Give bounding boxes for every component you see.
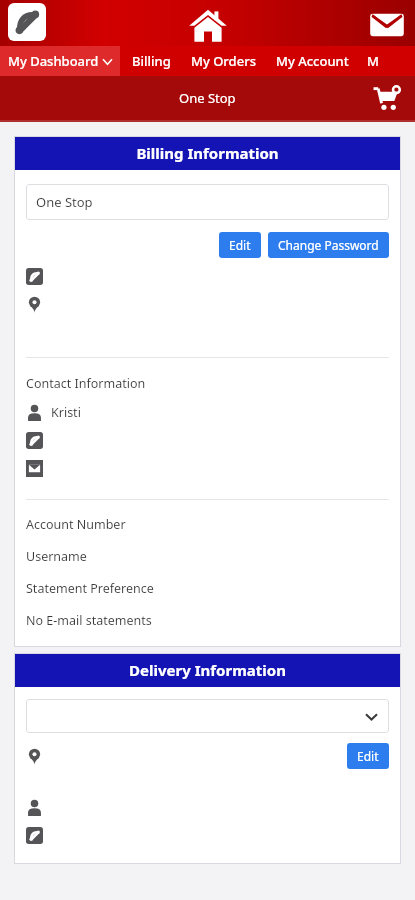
staticText: Change Password — [278, 237, 379, 253]
staticText: No E-mail statements — [26, 612, 152, 629]
staticText: My Account — [276, 52, 349, 70]
button[interactable]: Edit — [219, 232, 261, 258]
staticText: Contact Information — [26, 375, 146, 392]
staticText: Billing — [132, 52, 171, 70]
button[interactable]: My Dashboard — [0, 46, 120, 76]
button[interactable]: Change Password — [268, 232, 389, 258]
staticText: Billing Information — [136, 143, 279, 163]
staticText: Edit — [357, 748, 379, 764]
staticText: M — [367, 52, 379, 70]
button[interactable]: M — [355, 46, 385, 76]
staticText: One Stop — [36, 193, 93, 211]
staticText: Account Number — [26, 516, 126, 533]
button[interactable]: Edit — [347, 743, 389, 769]
staticText: Delivery Information — [129, 660, 286, 680]
button[interactable]: One Stop — [26, 184, 389, 220]
button[interactable]: Billing — [120, 46, 177, 76]
button[interactable]: Home — [186, 3, 230, 46]
button[interactable]: My Orders — [177, 46, 262, 76]
button[interactable] — [26, 699, 389, 733]
staticText: One Stop — [179, 89, 236, 107]
staticText: Statement Preference — [26, 580, 154, 597]
staticText: Edit — [229, 237, 251, 253]
button[interactable]: Call — [7, 2, 47, 42]
button[interactable]: My Account — [262, 46, 355, 76]
staticText: Username — [26, 548, 87, 565]
button[interactable]: Cart — [367, 79, 405, 117]
staticText: My Orders — [191, 52, 256, 70]
staticText: Kristi — [51, 404, 81, 421]
button[interactable]: Messages — [365, 3, 409, 46]
staticText: My Dashboard — [8, 52, 99, 70]
